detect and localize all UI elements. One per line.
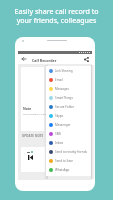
staticText: Send to Save [55,159,74,163]
staticText: Easily share call record to your friends… [0,6,113,25]
staticText: Note [23,106,32,111]
button[interactable]: SmartThings [46,93,91,102]
staticText: Link Sharing [55,69,73,73]
staticText: Inbox [55,141,64,145]
button[interactable]: WhatsApp [46,165,91,174]
button[interactable]: Secure Folder [46,102,91,111]
button[interactable]: SMS [46,129,91,138]
staticText: Skype [55,114,64,118]
button[interactable]: Messages [46,84,91,93]
button[interactable]: Email [46,75,91,84]
button[interactable]: Send to Save [46,156,91,165]
button[interactable]: Back [18,54,29,64]
staticText: SMS [55,132,62,136]
button[interactable]: Send to nearby friends [46,147,91,156]
button[interactable]: Share [81,54,92,64]
button[interactable]: Inbox [46,138,91,147]
staticText: Messages [55,87,69,91]
button[interactable]: Link Sharing [46,66,91,75]
staticText: UPDATE NOTE [22,134,44,138]
staticText: Messenger [55,123,71,127]
button[interactable]: Messenger [46,120,91,129]
staticText: Send to nearby friends [55,150,87,154]
staticText: Secure Folder [55,105,75,109]
staticText: Call Recorder [32,58,57,63]
staticText: Play Contains 4-5 mi [23,112,46,115]
button[interactable]: Skype [46,111,91,120]
staticText: WhatsApp [55,168,70,172]
staticText: Email [55,78,63,82]
staticText: SmartThings [55,96,73,100]
